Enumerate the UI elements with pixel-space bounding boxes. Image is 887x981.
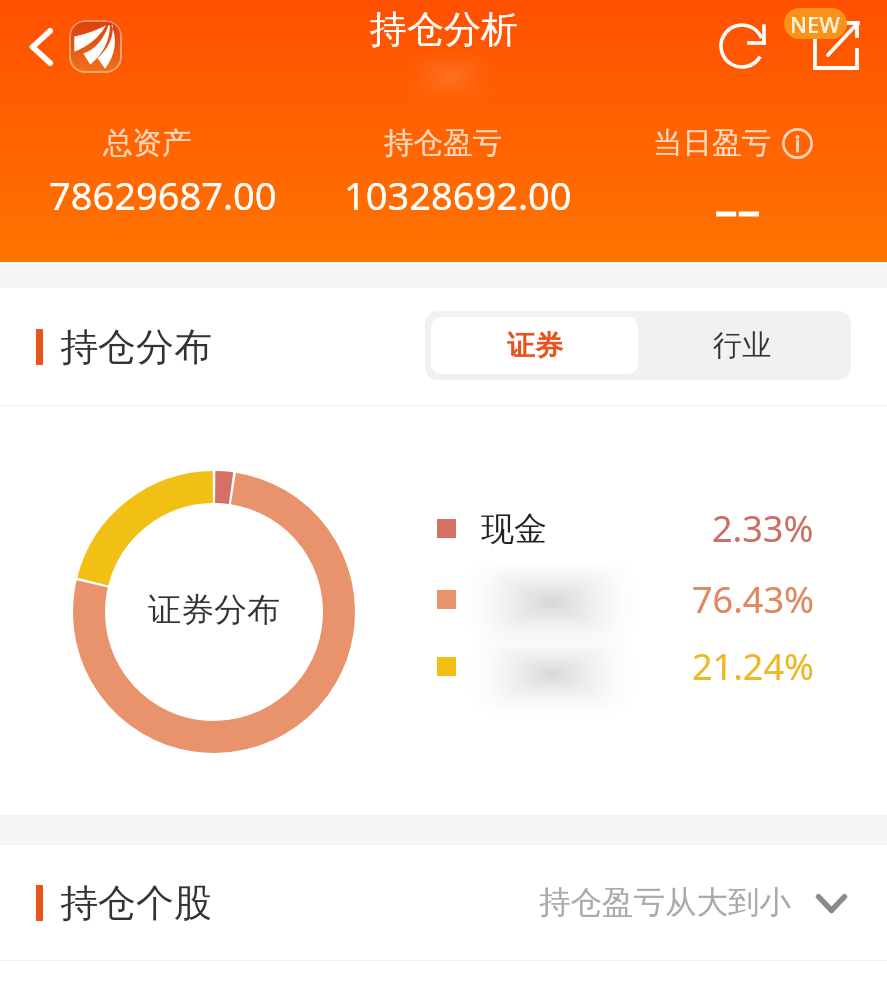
staticText: 76.43% (692, 575, 814, 615)
button[interactable]: 东方财富 (69, 20, 122, 73)
button[interactable]: 行业 (638, 317, 845, 374)
button[interactable]: 持仓盈亏从大到小 (539, 883, 846, 923)
staticText: NEW (790, 9, 841, 39)
staticText: 持仓盈亏 (384, 125, 502, 162)
staticText: 行业 (713, 327, 771, 364)
staticText: 2.33% (712, 504, 814, 544)
staticText: 21.24% (692, 642, 814, 682)
staticText: 10328692.00 (344, 169, 572, 221)
button[interactable]: Share (806, 12, 868, 74)
staticText: 现金 (481, 508, 547, 548)
staticText: 78629687.00 (49, 169, 277, 221)
staticText: 持仓个股 (60, 879, 212, 927)
button[interactable]: 证券 (431, 317, 638, 374)
staticText: 持仓分布 (60, 323, 212, 371)
button[interactable]: Refresh (712, 15, 772, 75)
staticText: 证券分布 (148, 589, 280, 631)
button[interactable]: Back (12, 18, 70, 76)
staticText: 持仓盈亏从大到小 (539, 883, 791, 923)
staticText: 证券 (507, 328, 563, 363)
staticText: 持仓分析 (370, 6, 518, 53)
staticText: 总资产 (103, 125, 192, 162)
staticText: 当日盈亏 (653, 125, 771, 162)
